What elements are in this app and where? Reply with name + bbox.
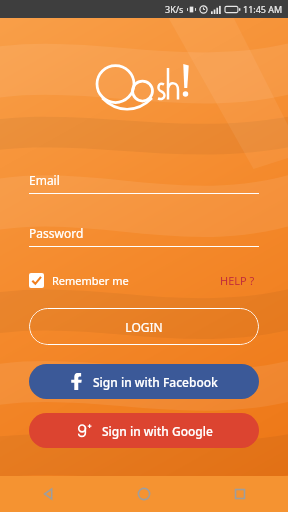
button[interactable]: Remember me xyxy=(29,273,129,288)
staticText: HELP ? xyxy=(220,273,255,288)
button[interactable]: Home xyxy=(96,476,192,512)
staticText: 3K/s xyxy=(165,3,184,15)
button[interactable]: Sign in with Facebook xyxy=(29,364,259,399)
button[interactable]: Password xyxy=(29,225,259,247)
staticText: LOGIN xyxy=(125,319,163,335)
button[interactable]: Email xyxy=(29,172,259,194)
button[interactable]: Back xyxy=(0,476,96,512)
staticText: Sign in with Google xyxy=(102,423,213,439)
button[interactable]: Sign in with Google xyxy=(29,413,259,448)
staticText: Password xyxy=(29,225,84,241)
staticText: Sign in with Facebook xyxy=(93,374,218,390)
button[interactable]: LOGIN xyxy=(29,308,259,345)
button[interactable]: Recent apps xyxy=(192,476,288,512)
staticText: 11:45 AM xyxy=(243,3,283,15)
button[interactable]: HELP ? xyxy=(216,269,259,292)
staticText: Remember me xyxy=(52,273,129,288)
staticText: Email xyxy=(29,172,60,188)
